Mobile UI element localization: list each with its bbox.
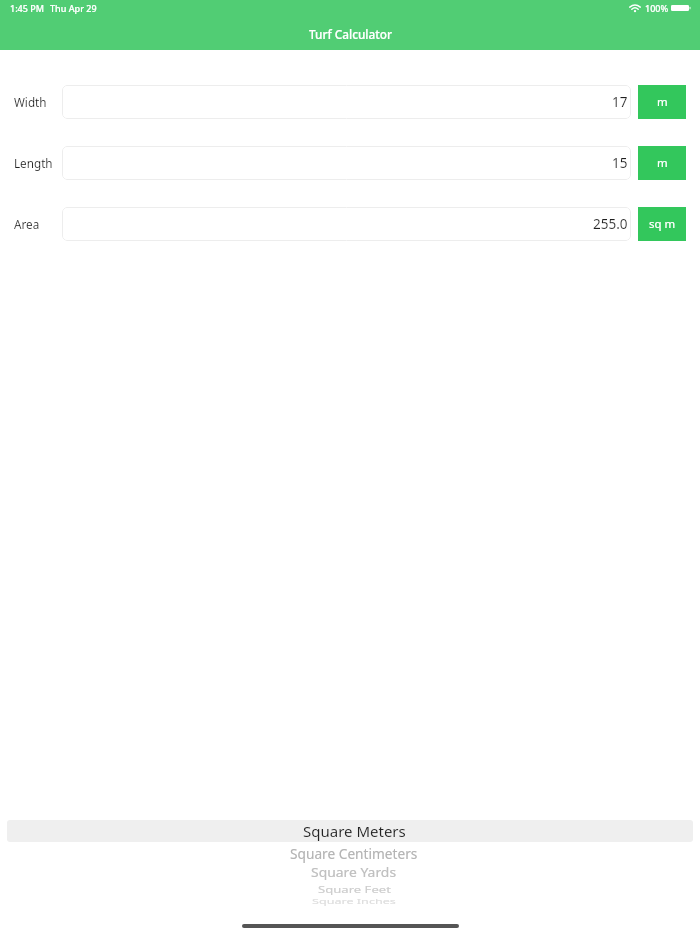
button[interactable]: Square Meters [0,817,700,845]
staticText: Square Yards [311,864,397,881]
staticText: m [657,155,668,171]
button[interactable]: 255.0 [62,207,631,241]
staticText: 1:45 PM [10,2,44,14]
other: Wi-Fi [629,5,641,12]
staticText: Turf Calculator [309,26,392,42]
staticText: Square Centimeters [290,843,418,863]
button[interactable]: sq m [638,207,686,241]
staticText: Square Meters [303,821,406,841]
staticText: Thu Apr 29 [50,2,97,14]
button[interactable]: 17 [62,85,631,119]
button[interactable]: 15 [62,146,631,180]
staticText: sq m [649,216,676,232]
button[interactable]: Square Inches [0,887,700,915]
staticText: Width [14,94,47,110]
staticText: 255.0 [593,215,628,233]
staticText: Square Feet [318,882,391,895]
button[interactable]: Square Centimeters [0,839,700,867]
button[interactable]: m [638,85,686,119]
staticText: Area [14,216,40,232]
staticText: 100% [645,2,669,14]
staticText: 15 [612,154,628,172]
button[interactable]: Square Feet [0,875,700,903]
button[interactable]: Square Yards [0,858,700,886]
other: Battery full [671,5,691,11]
staticText: Square Inches [312,897,396,906]
staticText: m [657,94,668,110]
staticText: 17 [612,93,628,111]
staticText: Length [14,155,53,171]
button[interactable]: m [638,146,686,180]
